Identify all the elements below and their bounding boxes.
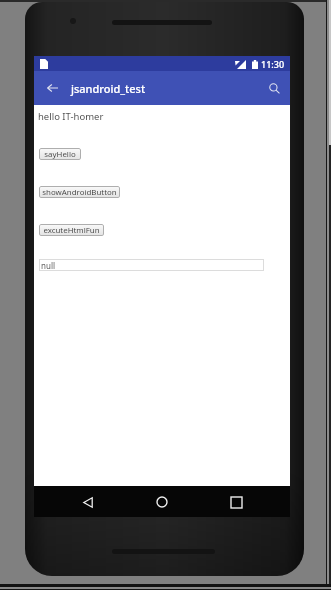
button[interactable]: Navigate up <box>40 76 64 100</box>
staticText: null <box>41 260 56 271</box>
staticText: hello IT-homer <box>38 110 104 123</box>
staticText: jsandroid_test <box>71 81 146 96</box>
staticText: excuteHtmlFun <box>43 225 100 236</box>
staticText: 11:30 <box>261 58 285 70</box>
button[interactable]: excuteHtmlFun <box>39 224 104 236</box>
button[interactable]: Home <box>152 492 172 512</box>
staticText: sayHello <box>44 149 76 160</box>
button[interactable]: sayHello <box>39 148 81 160</box>
button[interactable]: Back <box>78 492 98 512</box>
button[interactable]: showAndroidButton <box>39 186 120 198</box>
button[interactable]: Search <box>263 77 285 99</box>
button[interactable]: Recent apps <box>226 492 246 512</box>
staticText: showAndroidButton <box>42 187 117 198</box>
